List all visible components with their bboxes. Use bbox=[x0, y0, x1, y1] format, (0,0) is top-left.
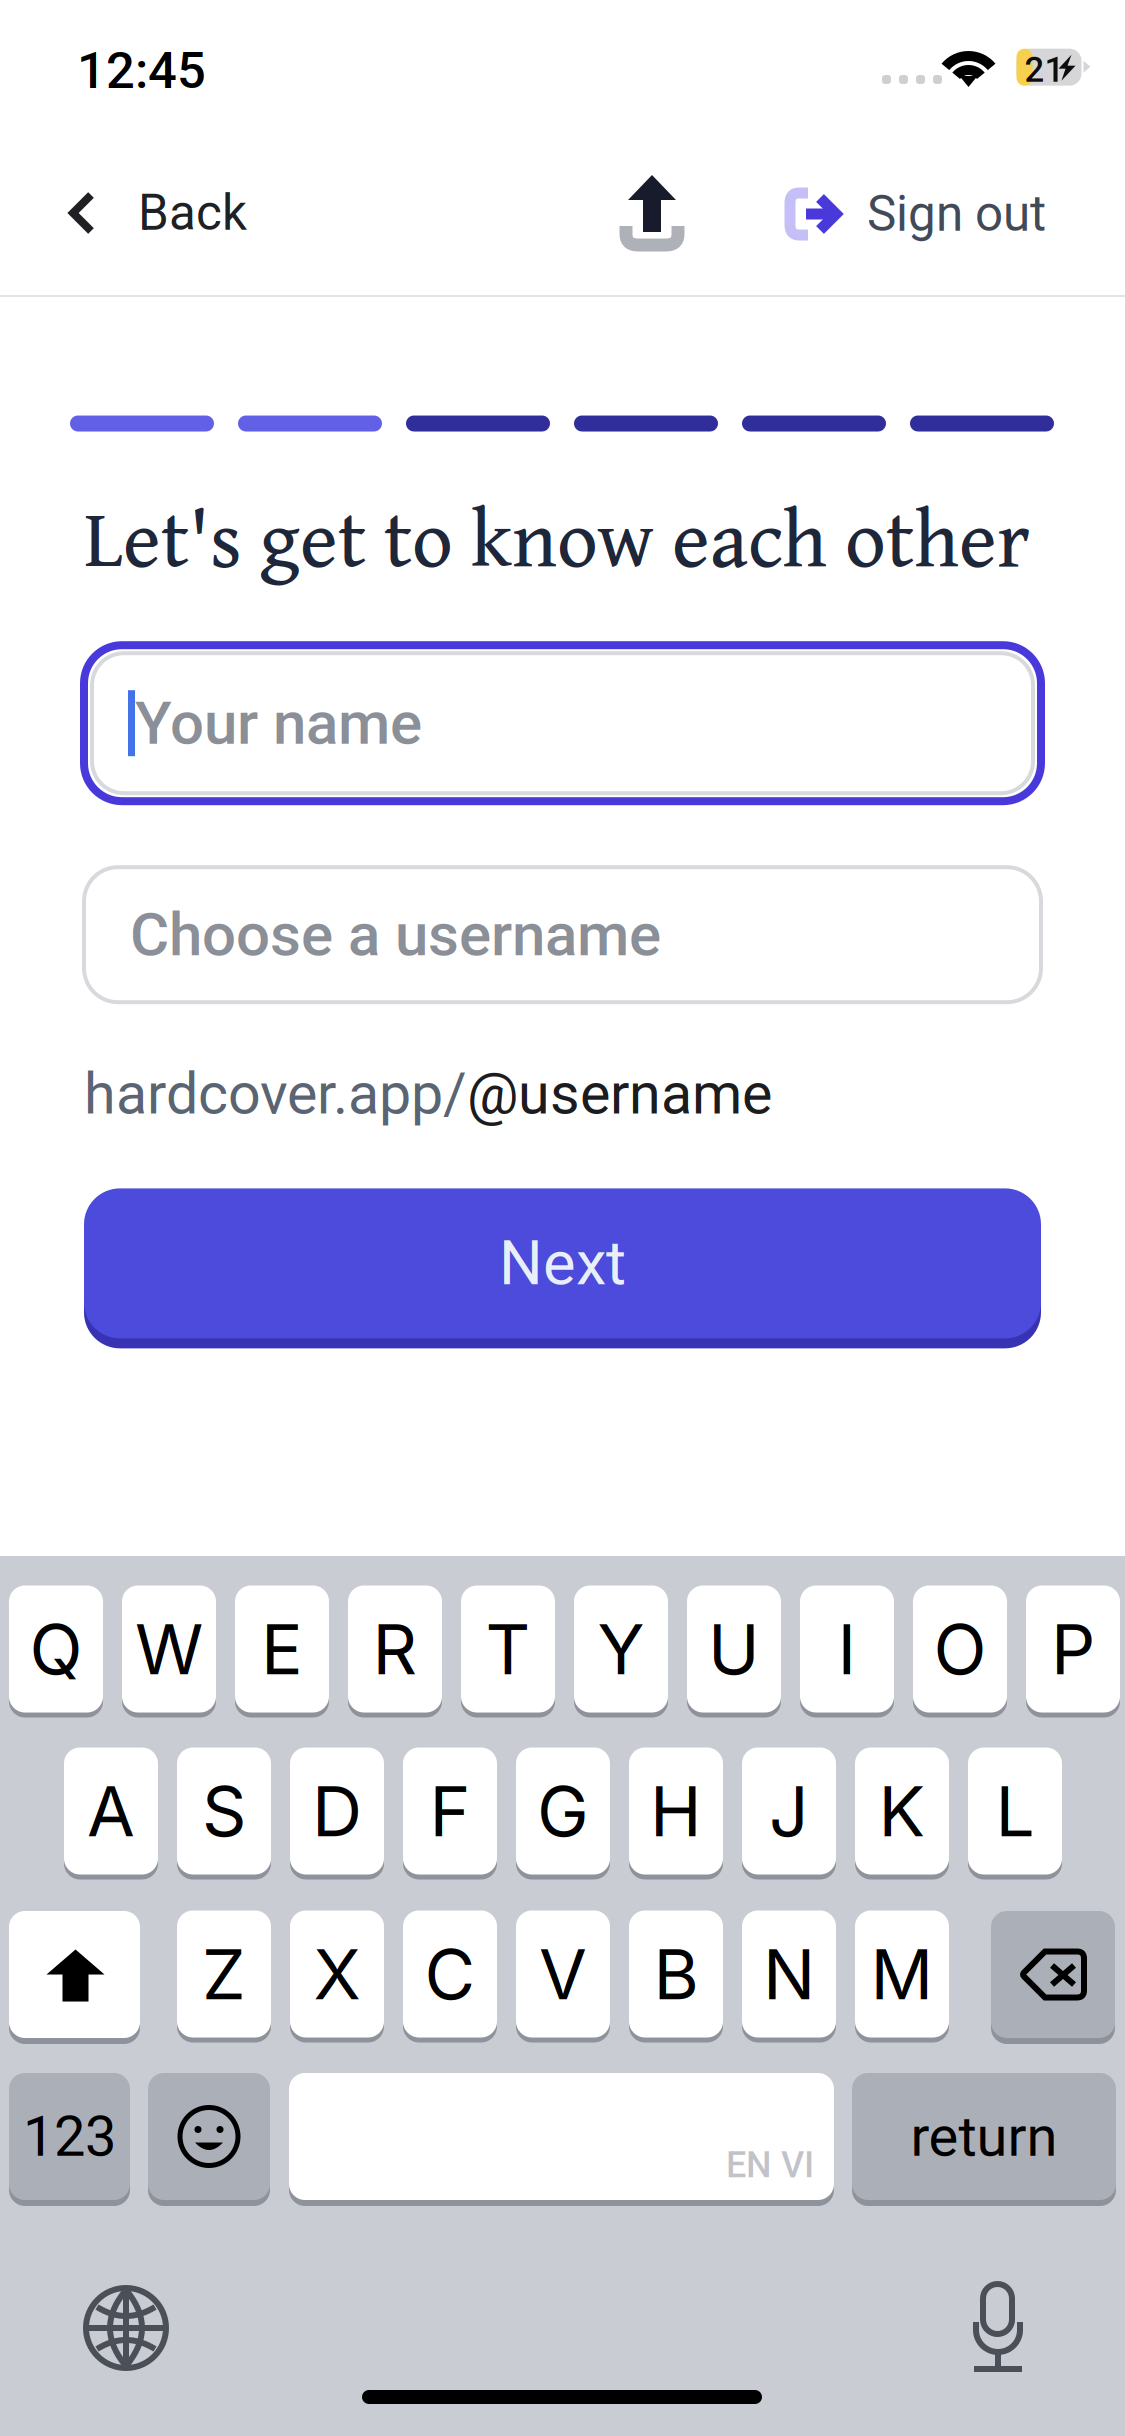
button[interactable]: Shift bbox=[9, 1908, 140, 2041]
staticText: P bbox=[1051, 1607, 1095, 1691]
button[interactable]: Space bbox=[289, 2070, 834, 2203]
staticText: 21 bbox=[1024, 50, 1064, 90]
staticText: L bbox=[995, 1769, 1034, 1853]
button[interactable]: Numbers bbox=[9, 2070, 130, 2203]
button[interactable]: A bbox=[64, 1745, 158, 1877]
staticText: 123 bbox=[23, 2104, 116, 2169]
staticText: U bbox=[708, 1607, 760, 1691]
button[interactable]: Share bbox=[602, 156, 702, 268]
staticText: T bbox=[485, 1607, 530, 1691]
button[interactable]: N bbox=[742, 1908, 836, 2040]
button[interactable]: Emoji bbox=[148, 2070, 270, 2203]
staticText: Sign out bbox=[867, 185, 1046, 243]
button[interactable]: Sign out bbox=[770, 154, 1060, 274]
staticText: X bbox=[313, 1932, 360, 2016]
button[interactable]: R bbox=[348, 1583, 442, 1715]
button[interactable]: return bbox=[852, 2070, 1116, 2203]
button[interactable]: J bbox=[742, 1745, 836, 1877]
button[interactable]: E bbox=[235, 1583, 329, 1715]
staticText: F bbox=[429, 1769, 470, 1853]
staticText: A bbox=[87, 1769, 135, 1853]
button[interactable]: X bbox=[290, 1908, 384, 2040]
staticText: J bbox=[769, 1769, 809, 1853]
staticText: Y bbox=[597, 1607, 644, 1691]
staticText: Z bbox=[202, 1932, 246, 2016]
button[interactable]: L bbox=[968, 1745, 1062, 1877]
staticText: B bbox=[653, 1932, 698, 2016]
staticText: Back bbox=[138, 184, 247, 242]
button[interactable]: K bbox=[855, 1745, 949, 1877]
button[interactable]: Next bbox=[84, 1182, 1041, 1344]
button[interactable]: V bbox=[516, 1908, 610, 2040]
staticText: Your name bbox=[135, 688, 422, 758]
button[interactable]: M bbox=[855, 1908, 949, 2040]
button[interactable]: I bbox=[800, 1583, 894, 1715]
button[interactable]: T bbox=[461, 1583, 555, 1715]
staticText: EN VI bbox=[726, 2144, 814, 2186]
button[interactable]: G bbox=[516, 1745, 610, 1877]
staticText: Next bbox=[499, 1227, 626, 1299]
staticText: I bbox=[837, 1607, 856, 1691]
button[interactable]: O bbox=[913, 1583, 1007, 1715]
staticText: V bbox=[539, 1932, 587, 2016]
staticText: Choose a username bbox=[130, 899, 661, 970]
staticText: Let's get to know each other bbox=[84, 478, 1030, 595]
staticText: G bbox=[537, 1769, 589, 1853]
button[interactable]: Q bbox=[9, 1583, 103, 1715]
button[interactable]: C bbox=[403, 1908, 497, 2040]
button[interactable]: U bbox=[687, 1583, 781, 1715]
staticText: K bbox=[878, 1769, 925, 1853]
staticText: W bbox=[135, 1607, 203, 1691]
staticText: hardcover.app/ bbox=[84, 1060, 467, 1127]
button[interactable]: F bbox=[403, 1745, 497, 1877]
button[interactable]: Back bbox=[53, 153, 263, 273]
button[interactable]: Choose a username bbox=[84, 867, 1041, 1002]
button[interactable]: Your name bbox=[84, 645, 1041, 801]
staticText: return bbox=[910, 2104, 1057, 2169]
button[interactable]: P bbox=[1026, 1583, 1120, 1715]
staticText: N bbox=[763, 1932, 815, 2016]
staticText: O bbox=[933, 1607, 986, 1691]
staticText: S bbox=[202, 1769, 246, 1853]
button[interactable]: H bbox=[629, 1745, 723, 1877]
button[interactable]: W bbox=[122, 1583, 216, 1715]
staticText: M bbox=[870, 1932, 933, 2016]
button[interactable]: Z bbox=[177, 1908, 271, 2040]
button[interactable]: Next keyboard bbox=[72, 2274, 180, 2382]
staticText: E bbox=[261, 1607, 303, 1691]
button[interactable]: S bbox=[177, 1745, 271, 1877]
button[interactable]: Delete bbox=[991, 1908, 1115, 2041]
staticText: C bbox=[424, 1932, 475, 2016]
staticText: H bbox=[650, 1769, 702, 1853]
button[interactable]: Dictation bbox=[955, 2268, 1041, 2388]
button[interactable]: B bbox=[629, 1908, 723, 2040]
button[interactable]: Y bbox=[574, 1583, 668, 1715]
staticText: 12:45 bbox=[77, 41, 206, 100]
staticText: D bbox=[312, 1769, 362, 1853]
button[interactable]: D bbox=[290, 1745, 384, 1877]
staticText: @username bbox=[467, 1060, 772, 1127]
staticText: R bbox=[372, 1607, 417, 1691]
staticText: Q bbox=[29, 1607, 82, 1691]
